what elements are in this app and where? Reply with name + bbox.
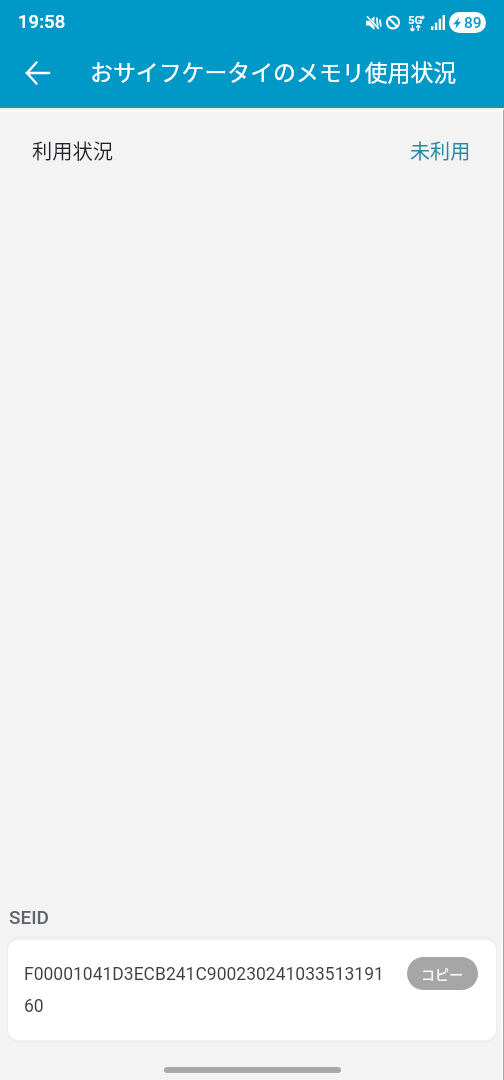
staticText: 利用状況 bbox=[32, 136, 114, 165]
button[interactable]: 利用状況 bbox=[0, 107, 504, 193]
staticText: おサイフケータイのメモリ使用状況 bbox=[90, 54, 457, 87]
button[interactable]: Back bbox=[6, 42, 68, 104]
staticText: F00001041D3ECB241C90023024103351319160 bbox=[24, 964, 391, 1016]
staticText: コピー bbox=[421, 964, 464, 984]
staticText: 未利用 bbox=[410, 136, 471, 165]
staticText: 19:58 bbox=[18, 11, 66, 33]
staticText: SEID bbox=[9, 906, 49, 928]
staticText: 89 bbox=[464, 14, 482, 32]
button[interactable]: コピー bbox=[407, 957, 478, 990]
staticText: 5G bbox=[408, 13, 423, 26]
